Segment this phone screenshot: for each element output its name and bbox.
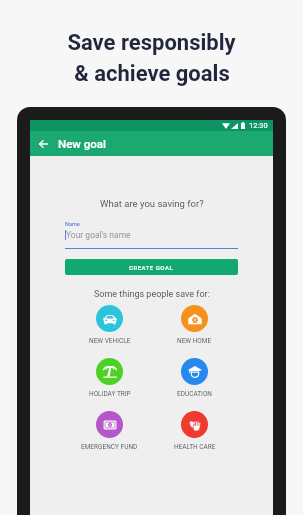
staticText: EMERGENCY FUND <box>81 443 138 451</box>
staticText: What are you saving for? <box>100 198 204 209</box>
button[interactable]: CREATE GOAL <box>65 259 238 275</box>
staticText: Your goal's name <box>66 230 131 240</box>
staticText: 12:30 <box>249 121 268 130</box>
staticText: Name <box>65 221 80 227</box>
button[interactable]: EDUCATION <box>152 358 237 398</box>
staticText: Save responsibly <box>67 30 236 56</box>
staticText: HEALTH CARE <box>174 443 216 451</box>
button[interactable]: Back <box>30 131 56 156</box>
button[interactable]: NEW VEHICLE <box>67 305 152 345</box>
staticText: CREATE GOAL <box>129 264 174 271</box>
button[interactable]: HOLIDAY TRIP <box>67 358 152 398</box>
staticText: & achieve goals <box>74 61 230 87</box>
staticText: Some things people save for: <box>94 289 210 300</box>
staticText: EDUCATION <box>177 390 212 398</box>
button[interactable]: EMERGENCY FUND <box>67 411 152 451</box>
staticText: HOLIDAY TRIP <box>89 390 131 398</box>
staticText: NEW VEHICLE <box>89 337 131 345</box>
staticText: NEW HOME <box>177 337 212 345</box>
button[interactable]: HEALTH CARE <box>152 411 237 451</box>
staticText: New goal <box>58 137 106 150</box>
button[interactable]: NEW HOME <box>152 305 237 345</box>
